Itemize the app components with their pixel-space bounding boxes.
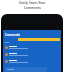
staticText: Easily Saves Your [19,1,46,5]
button[interactable] [3,51,61,58]
staticText: Comments [5,33,21,37]
button[interactable]: Comments [5,33,21,37]
button[interactable] [18,38,60,41]
button[interactable] [3,58,61,65]
staticText: Comments [24,6,41,10]
button[interactable] [5,67,47,72]
button[interactable] [3,44,61,51]
